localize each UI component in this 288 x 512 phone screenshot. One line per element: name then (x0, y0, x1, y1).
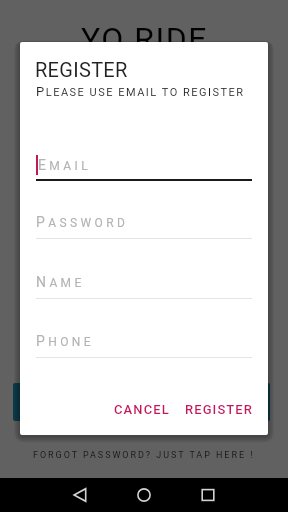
staticText: YO RIDE (81, 20, 208, 58)
button[interactable]: Home (127, 478, 161, 512)
button[interactable]: CANCEL (107, 395, 177, 424)
button[interactable]: Back (63, 478, 97, 512)
staticText: REGISTER (185, 402, 254, 417)
staticText: NAME (36, 274, 85, 290)
staticText: CANCEL (114, 402, 170, 417)
button[interactable]: REGISTER (178, 395, 261, 424)
button[interactable]: LOGIN (13, 383, 270, 421)
staticText: FORGOT PASSWORD? JUST TAP HERE ! (33, 450, 255, 461)
staticText: PHONE (36, 333, 95, 349)
staticText: PASSWORD (36, 214, 129, 230)
staticText: EMAIL (38, 157, 92, 173)
staticText: REGISTER (35, 58, 128, 81)
button[interactable]: FORGOT PASSWORD? JUST TAP HERE ! (29, 446, 259, 465)
staticText: PLEASE USE EMAIL TO REGISTER (36, 84, 245, 99)
staticText: LOGIN (119, 394, 165, 410)
button[interactable]: Recent apps (191, 478, 225, 512)
